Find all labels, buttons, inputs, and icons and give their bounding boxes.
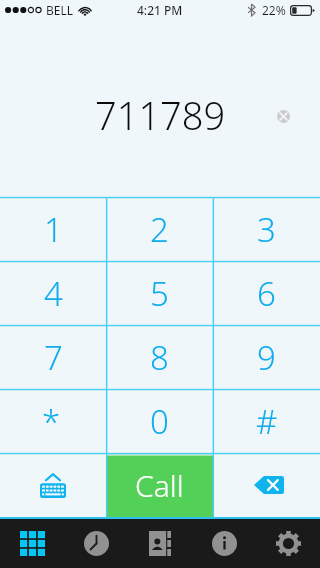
staticText: 0 <box>150 399 169 444</box>
button[interactable]: 0 <box>106 389 213 453</box>
button[interactable]: 7 <box>0 325 106 389</box>
button[interactable]: Clear <box>268 101 298 131</box>
staticText: 9 <box>257 335 276 380</box>
button[interactable]: Hide keyboard <box>0 453 106 517</box>
button[interactable]: 1 <box>0 197 106 261</box>
button[interactable]: Keypad <box>0 519 64 568</box>
button[interactable]: 2 <box>106 197 213 261</box>
staticText: 5 <box>150 271 169 316</box>
staticText: 6 <box>257 271 276 316</box>
staticText: # <box>256 399 278 444</box>
staticText: 2 <box>150 207 169 252</box>
staticText: 4:21 PM <box>137 2 183 18</box>
staticText: 22% <box>262 2 286 18</box>
button[interactable]: 8 <box>106 325 213 389</box>
staticText: BELL <box>46 2 74 18</box>
button[interactable]: Backspace <box>213 453 320 517</box>
button[interactable]: Settings <box>256 519 320 568</box>
staticText: 3 <box>257 207 276 252</box>
staticText: 1 <box>44 207 63 252</box>
button[interactable]: 9 <box>213 325 320 389</box>
staticText: 8 <box>150 335 169 380</box>
button[interactable]: Contacts <box>128 519 192 568</box>
button[interactable]: 6 <box>213 261 320 325</box>
button[interactable]: # <box>213 389 320 453</box>
staticText: 7 <box>44 335 63 380</box>
button[interactable]: Recents <box>64 519 128 568</box>
button[interactable]: Info <box>192 519 256 568</box>
staticText: * <box>42 399 61 444</box>
button[interactable]: 3 <box>213 197 320 261</box>
button[interactable]: * <box>0 389 106 453</box>
button[interactable]: 5 <box>106 261 213 325</box>
button[interactable]: 4 <box>0 261 106 325</box>
button[interactable]: Call <box>106 453 213 517</box>
staticText: 711789 <box>95 89 226 141</box>
staticText: Call <box>135 465 184 506</box>
staticText: 4 <box>44 271 63 316</box>
